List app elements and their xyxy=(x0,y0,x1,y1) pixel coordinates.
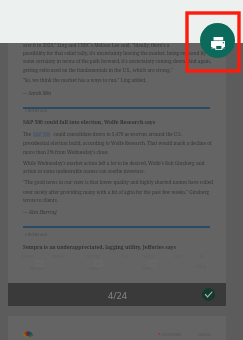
staticText: presidential election build, according t… xyxy=(23,140,212,146)
staticText: S&P 500 xyxy=(33,131,51,137)
staticText: 4/24 xyxy=(108,289,127,301)
staticText: "So, we think the market has a ways to r… xyxy=(23,77,147,83)
staticText: S&P 500 could fall into election, Wolfe … xyxy=(23,119,156,126)
staticText: While Wednesday's market action left a l… xyxy=(23,160,205,166)
staticText: over nicely after providing many with a … xyxy=(23,189,210,195)
staticText: saw it in 2020," Ling and CNBC's Melissa… xyxy=(23,42,170,48)
staticText: SIGN IN xyxy=(198,332,211,337)
staticText: some certainty in terms of the path forw… xyxy=(23,58,212,64)
staticText: could consolidate down to 5,470 as worri… xyxy=(51,131,182,137)
staticText: more than 2% from Wednesday's close. xyxy=(23,149,109,155)
staticText: wrote to clients. xyxy=(23,197,58,203)
staticText: Sempra is an underappreciated, lagging u… xyxy=(23,244,176,251)
staticText: — Sarah Min xyxy=(23,90,52,96)
staticText: 4 HOURS AGO xyxy=(25,233,48,237)
staticText: LIVESTREAM xyxy=(161,332,181,337)
button[interactable]: Page selected xyxy=(202,288,215,301)
staticText: getting refocused on the fundamentals in… xyxy=(23,67,173,73)
staticText: "The good news in our view is that lower… xyxy=(23,179,213,185)
button[interactable]: Print xyxy=(200,23,235,58)
staticText: The xyxy=(23,131,33,137)
staticText: possibility for that relief rally, it's … xyxy=(23,50,206,56)
staticText: action in some undesirable names can soo… xyxy=(23,168,145,174)
staticText: — Alex Harring xyxy=(23,209,57,215)
staticText: 2 HOURS AGO xyxy=(25,109,48,113)
